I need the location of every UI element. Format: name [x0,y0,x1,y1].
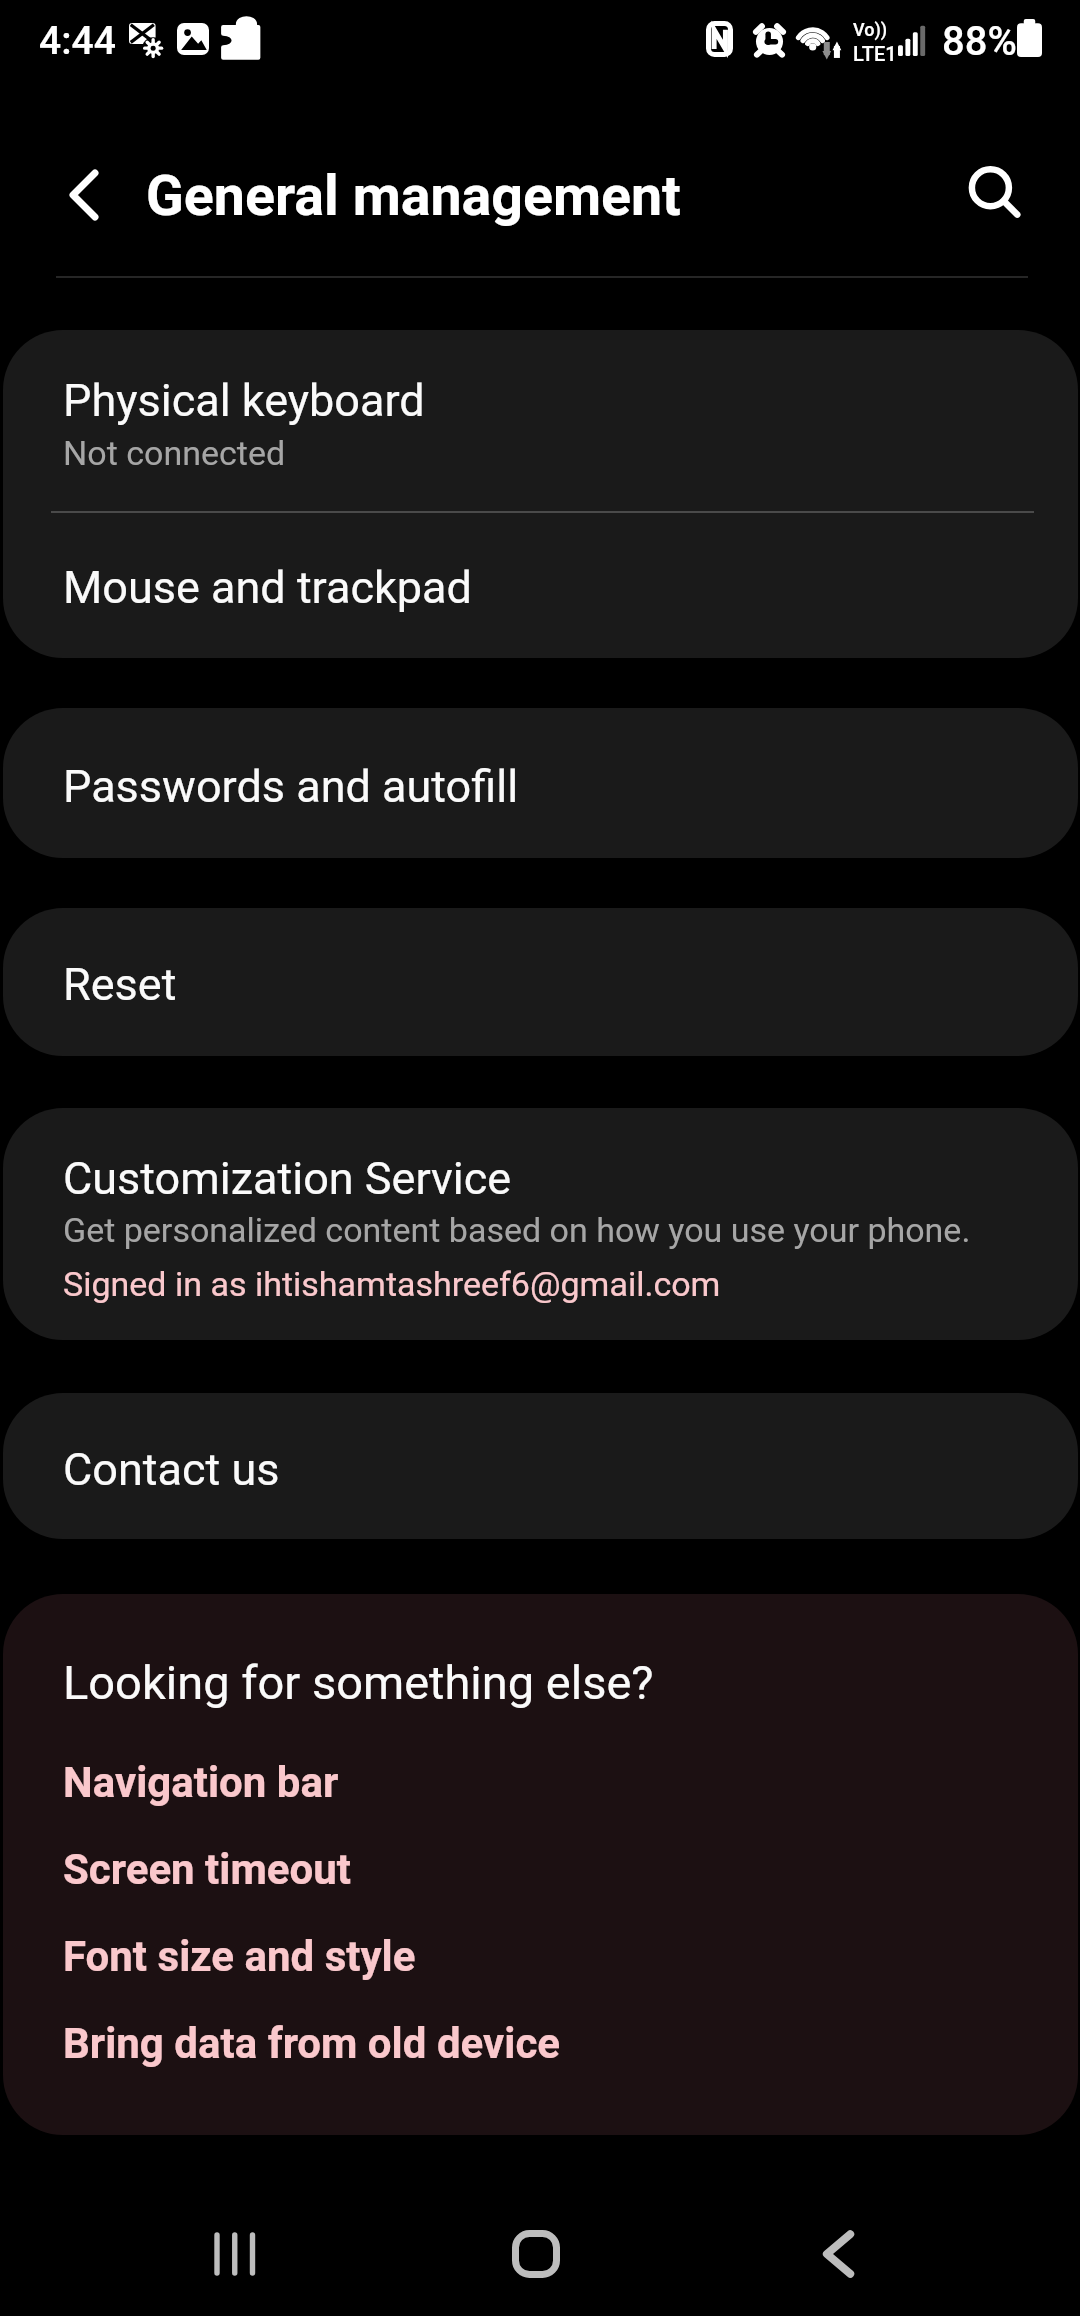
staticText: Vo)) [853,19,888,40]
staticText: Not connected [63,433,286,473]
staticText: 88% [942,18,1017,65]
staticText: Looking for something else? [63,1655,654,1710]
staticText: Font size and style [63,1932,416,1981]
button[interactable]: Recent apps [175,2194,295,2314]
staticText: Reset [63,958,177,1011]
button[interactable]: Customization Service [3,1108,1078,1340]
staticText: Bring data from old device [63,2019,561,2068]
button[interactable]: Back [777,2194,897,2314]
staticText: LTE1 [853,42,897,65]
staticText: Signed in as ihtishamtashreef6@gmail.com [63,1264,721,1304]
button[interactable]: Search [938,141,1048,227]
staticText: Mouse and trackpad [63,561,472,614]
button[interactable]: Font size and style [63,1932,416,1981]
staticText: Navigation bar [63,1758,339,1807]
staticText: Contact us [63,1443,280,1496]
staticText: Get personalized content based on how yo… [63,1210,971,1250]
button[interactable]: Bring data from old device [63,2019,561,2068]
button[interactable]: Navigate up [29,141,135,227]
button[interactable]: Mouse and trackpad [3,513,1078,658]
button[interactable]: Screen timeout [63,1845,351,1894]
button[interactable]: Contact us [3,1393,1078,1539]
staticText: Screen timeout [63,1845,351,1894]
button[interactable]: Passwords and autofill [3,708,1078,858]
staticText: General management [146,164,681,229]
button[interactable]: Reset [3,908,1078,1056]
staticText: Customization Service [63,1152,512,1205]
button[interactable]: Navigation bar [63,1758,339,1807]
button[interactable]: Home [476,2194,596,2314]
button[interactable]: Physical keyboard [3,330,1078,512]
staticText: 4:44 [39,18,116,64]
staticText: Physical keyboard [63,374,425,427]
staticText: Passwords and autofill [63,760,519,813]
